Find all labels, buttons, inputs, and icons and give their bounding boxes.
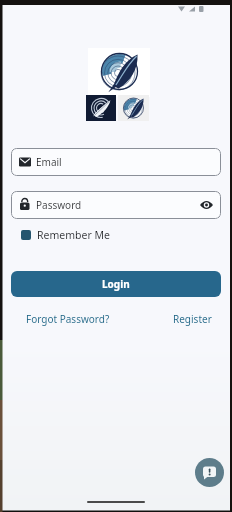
button[interactable]: Register	[169, 308, 216, 330]
staticText: Register	[173, 312, 212, 326]
staticText: Login	[102, 277, 130, 291]
button[interactable]: Email	[11, 148, 221, 176]
button[interactable]: Forgot Password?	[22, 308, 114, 330]
staticText: Email	[36, 155, 62, 169]
button[interactable]: Password	[11, 191, 221, 219]
button[interactable]	[195, 458, 224, 487]
staticText: Forgot Password?	[26, 312, 110, 326]
button[interactable]: Remember Me	[21, 227, 110, 243]
button[interactable]: Login	[11, 271, 221, 297]
staticText: Password	[36, 198, 82, 212]
staticText: Remember Me	[37, 228, 110, 242]
